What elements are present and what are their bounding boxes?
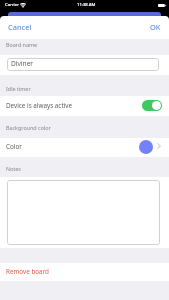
staticText: 11:38 AM xyxy=(77,2,96,8)
staticText: Notes xyxy=(6,165,21,172)
button[interactable]: Remove board xyxy=(0,263,169,281)
button[interactable]: Device is always active toggle xyxy=(142,100,162,111)
staticText: Idle timer xyxy=(6,85,31,92)
staticText: Device is always active xyxy=(6,101,73,110)
button[interactable]: Cancel xyxy=(0,18,38,36)
staticText: OK xyxy=(150,22,161,32)
staticText: Diviner xyxy=(11,59,34,68)
staticText: Color xyxy=(6,142,22,151)
button[interactable]: Color xyxy=(0,138,169,157)
staticText: Board name xyxy=(6,41,38,48)
staticText: Cancel xyxy=(8,22,32,32)
button[interactable]: OK xyxy=(144,18,169,36)
button[interactable] xyxy=(7,180,160,245)
staticText: Background color xyxy=(6,124,51,131)
button[interactable]: Diviner xyxy=(7,58,159,71)
staticText: Carrier xyxy=(5,2,19,8)
staticText: Remove board xyxy=(6,267,49,276)
button[interactable]: Device is always active xyxy=(0,96,169,116)
